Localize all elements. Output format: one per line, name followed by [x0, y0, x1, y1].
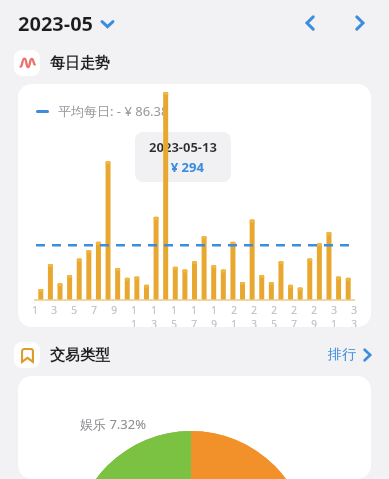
button[interactable]: 平均每日: - ¥ 86.38 — [18, 84, 371, 327]
staticText: - ¥ 294 — [163, 158, 204, 176]
staticText: 23 — [249, 303, 259, 327]
staticText: 5 — [71, 303, 77, 317]
staticText: 15 — [169, 303, 179, 327]
staticText: 25 — [269, 303, 279, 327]
button[interactable]: 2023-05 — [16, 8, 116, 39]
staticText: 17 — [189, 303, 199, 327]
staticText: 2023-05 — [18, 10, 94, 37]
staticText: 31 — [329, 303, 339, 327]
staticText: 9 — [111, 303, 117, 317]
staticText: 1 — [32, 303, 38, 317]
staticText: 13 — [149, 303, 159, 327]
staticText: 娱乐 7.32% — [80, 415, 146, 433]
staticText: 7 — [91, 303, 97, 317]
staticText: 19 — [209, 303, 219, 327]
button[interactable]: 排行 — [325, 343, 375, 367]
button[interactable]: Previous month — [291, 4, 329, 42]
staticText: 27 — [289, 303, 299, 327]
staticText: 29 — [309, 303, 319, 327]
staticText: 11 — [129, 303, 139, 327]
staticText: 交易类型 — [50, 346, 110, 365]
staticText: 33 — [349, 303, 359, 327]
staticText: 2023-05-13 — [149, 138, 217, 156]
staticText: 每日走势 — [50, 54, 110, 73]
staticText: 排行 — [328, 346, 356, 364]
staticText: 21 — [229, 303, 239, 327]
staticText: 3 — [51, 303, 57, 317]
button[interactable]: 娱乐 7.32% — [18, 376, 371, 479]
button[interactable]: Next month — [341, 4, 379, 42]
staticText: 平均每日: - ¥ 86.38 — [58, 102, 169, 120]
